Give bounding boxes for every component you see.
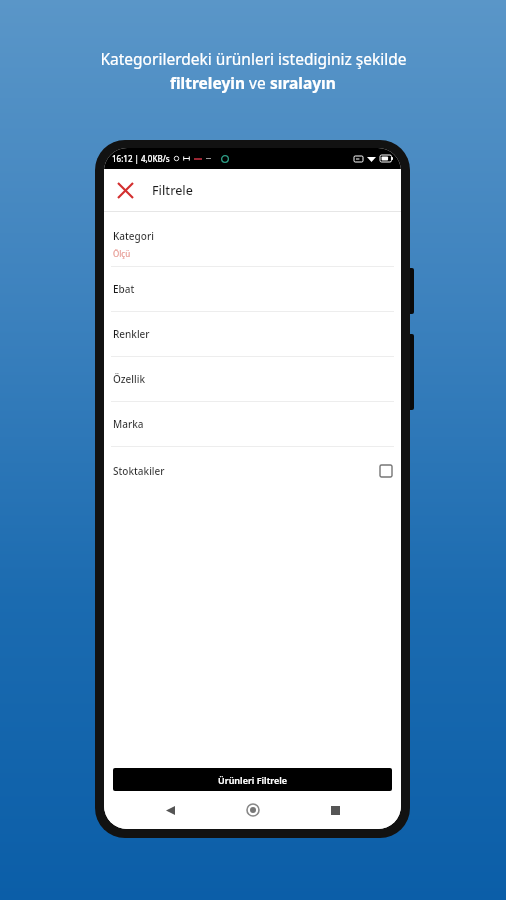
- staticText: sıralayın: [270, 72, 336, 93]
- button[interactable]: Kapat: [104, 169, 146, 211]
- button[interactable]: Kategori: [104, 222, 401, 266]
- button[interactable]: Özellik: [104, 357, 401, 401]
- staticText: Marka: [113, 417, 144, 431]
- button[interactable]: Ebat: [104, 267, 401, 311]
- staticText: Kategorilerdeki ürünleri istediginiz şek…: [100, 48, 407, 69]
- staticText: Stoktakiler: [113, 464, 165, 478]
- staticText: Renkler: [113, 327, 150, 341]
- staticText: Kategori: [113, 229, 154, 243]
- button[interactable]: Stoktakiler: [104, 447, 401, 495]
- staticText: 16:12 | 4,0KB/s: [112, 153, 170, 164]
- staticText: Özellik: [113, 372, 146, 386]
- staticText: Ürünleri Filtrele: [218, 774, 288, 786]
- button[interactable]: Marka: [104, 402, 401, 446]
- button[interactable]: Ürünleri Filtrele: [113, 768, 392, 791]
- staticText: filtreleyin: [170, 72, 245, 93]
- button[interactable]: Ana ekran: [236, 793, 270, 827]
- button[interactable]: Geri: [153, 793, 187, 827]
- button[interactable]: Son uygulamalar: [318, 793, 352, 827]
- staticText: Ebat: [113, 282, 135, 296]
- button[interactable]: Renkler: [104, 312, 401, 356]
- staticText: Filtrele: [152, 182, 193, 199]
- staticText: ve: [245, 72, 270, 93]
- staticText: Ölçü: [113, 248, 131, 259]
